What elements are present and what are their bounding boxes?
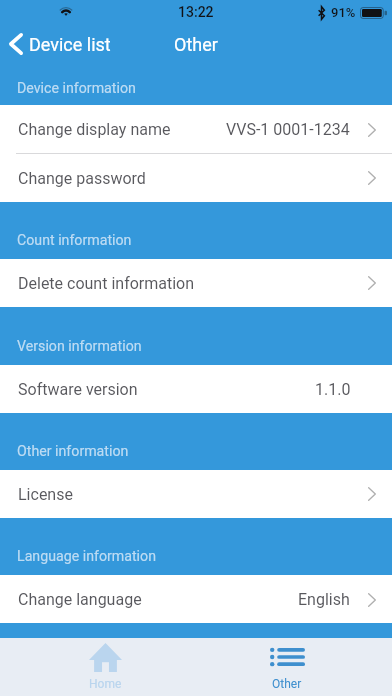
staticText: Other	[174, 34, 218, 55]
staticText: Change password	[18, 169, 146, 188]
staticText: License	[18, 485, 73, 504]
button[interactable]: Software version	[0, 365, 392, 413]
staticText: Device information	[17, 80, 136, 97]
staticText: VVS-1 0001-1234	[226, 120, 350, 139]
staticText: Version information	[17, 338, 142, 355]
staticText: Software version	[18, 380, 138, 399]
staticText: 13:22	[178, 4, 214, 20]
staticText: 1.1.0	[315, 380, 351, 399]
button[interactable]: Device list	[0, 33, 119, 55]
button[interactable]: Change password	[0, 154, 392, 202]
button[interactable]: Change display name	[0, 105, 392, 153]
button[interactable]: License	[0, 470, 392, 518]
staticText: Change display name	[18, 120, 171, 139]
staticText: 91%	[331, 5, 356, 20]
staticText: Other information	[17, 443, 129, 460]
staticText: Home	[89, 677, 122, 691]
staticText: Count information	[17, 232, 132, 249]
button[interactable]: Change language	[0, 575, 392, 623]
staticText: Device list	[29, 34, 111, 55]
button[interactable]: Other	[237, 638, 337, 696]
staticText: Delete count information	[18, 274, 195, 293]
button[interactable]: Delete count information	[0, 259, 392, 307]
staticText: Change language	[18, 590, 142, 609]
staticText: Language information	[17, 548, 157, 565]
staticText: Other	[272, 677, 302, 691]
button[interactable]: Home	[55, 638, 155, 696]
staticText: English	[298, 590, 350, 609]
